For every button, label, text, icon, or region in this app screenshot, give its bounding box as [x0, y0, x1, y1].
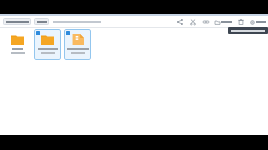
button[interactable]: Sélectionné [36, 31, 40, 35]
button[interactable]: Fichier [64, 29, 91, 60]
button[interactable]: Déplacer [215, 18, 232, 26]
button[interactable]: Couper [189, 18, 197, 26]
button[interactable]: Dossier [4, 29, 31, 60]
button[interactable]: Sélectionné [66, 31, 70, 35]
button[interactable]: Obtenir [250, 18, 266, 26]
button[interactable] [34, 18, 49, 25]
button[interactable]: Copier le lien [202, 18, 210, 26]
button[interactable]: Dossier [34, 29, 61, 60]
button[interactable] [3, 18, 31, 25]
button[interactable]: Partager [176, 18, 184, 26]
button[interactable]: Supprimer [237, 18, 245, 26]
